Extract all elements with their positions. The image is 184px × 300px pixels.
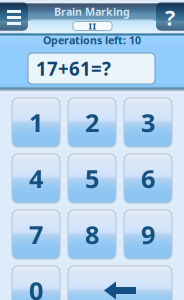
staticText: Brain Marking bbox=[54, 4, 130, 19]
button[interactable]: Menu bbox=[0, 3, 28, 31]
button[interactable]: Delete bbox=[68, 266, 172, 300]
staticText: 5 bbox=[85, 162, 99, 195]
button[interactable]: 8 bbox=[68, 210, 116, 259]
button[interactable]: Help bbox=[156, 3, 184, 31]
staticText: 17+61=? bbox=[36, 56, 111, 81]
button[interactable]: 4 bbox=[12, 154, 60, 203]
staticText: 3 bbox=[141, 106, 155, 139]
button[interactable]: 3 bbox=[124, 98, 172, 147]
staticText: Operations left: 10 bbox=[43, 33, 141, 47]
staticText: 4 bbox=[29, 162, 43, 195]
button[interactable]: 0 bbox=[12, 266, 60, 300]
staticText: 6 bbox=[141, 162, 155, 195]
staticText: 7 bbox=[29, 218, 43, 251]
staticText: 0 bbox=[29, 274, 43, 300]
staticText: 2 bbox=[85, 106, 99, 139]
staticText: 9 bbox=[141, 218, 155, 251]
button[interactable]: 7 bbox=[12, 210, 60, 259]
staticText: II bbox=[88, 20, 96, 32]
button[interactable]: 9 bbox=[124, 210, 172, 259]
button[interactable]: 6 bbox=[124, 154, 172, 203]
staticText: 1 bbox=[29, 106, 43, 139]
staticText: ? bbox=[165, 3, 175, 32]
button[interactable]: 2 bbox=[68, 98, 116, 147]
staticText: 8 bbox=[85, 218, 99, 251]
button[interactable]: 5 bbox=[68, 154, 116, 203]
button[interactable]: 1 bbox=[12, 98, 60, 147]
